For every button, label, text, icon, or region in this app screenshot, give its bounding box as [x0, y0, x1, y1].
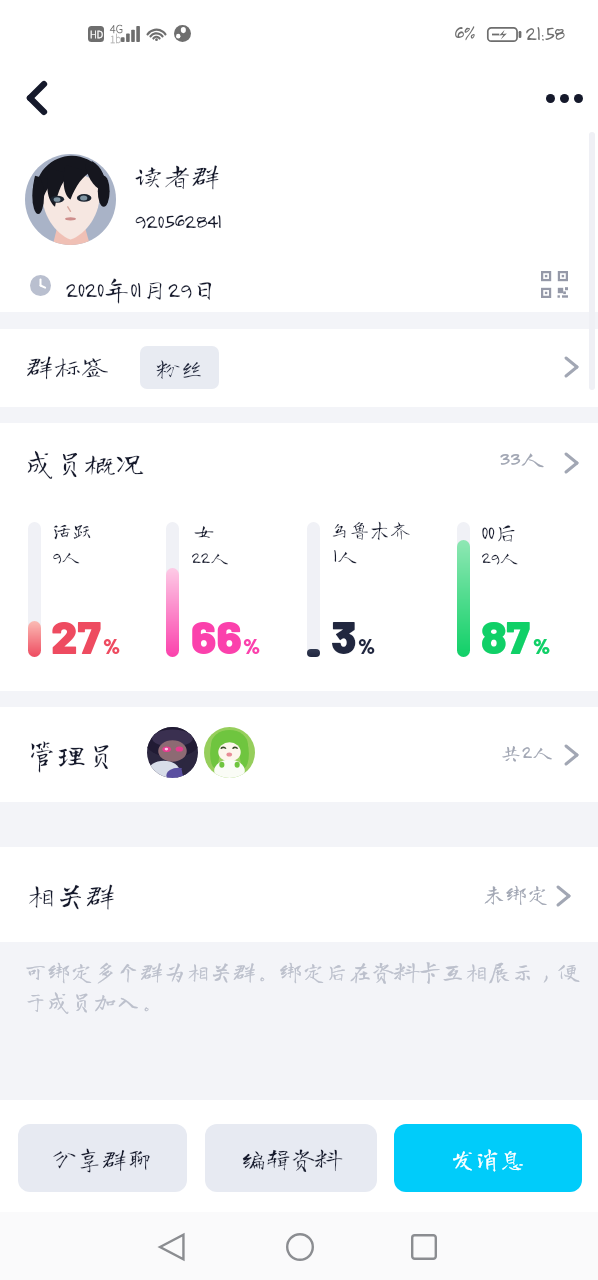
- staticText: 相关群: [26, 880, 116, 910]
- staticText: 21:58: [525, 21, 564, 45]
- staticText: HD: [90, 27, 103, 41]
- staticText: 6%: [454, 21, 475, 45]
- staticText: 共2人: [500, 741, 554, 763]
- staticText: 读者群: [134, 161, 221, 190]
- button[interactable]: 编辑资料: [205, 1124, 377, 1192]
- staticText: %: [358, 633, 375, 658]
- staticText: 4G: [110, 20, 124, 36]
- staticText: 活跃: [52, 520, 92, 540]
- staticText: 分享群聊: [52, 1146, 153, 1171]
- staticText: 2020年01月29日: [65, 276, 218, 302]
- staticText: 1b: [110, 31, 122, 45]
- staticText: 87: [481, 608, 531, 663]
- staticText: 粉丝: [156, 356, 204, 380]
- staticText: %: [103, 633, 120, 658]
- button[interactable]: Back: [144, 1219, 200, 1275]
- staticText: 成员概况: [25, 448, 145, 478]
- button[interactable]: 发消息: [394, 1124, 582, 1192]
- button[interactable]: [0, 423, 598, 495]
- staticText: %: [533, 633, 550, 658]
- staticText: 27: [51, 608, 102, 663]
- button[interactable]: More options: [536, 70, 592, 126]
- staticText: %: [243, 633, 260, 658]
- staticText: 22人: [191, 547, 230, 567]
- button[interactable]: [0, 847, 598, 942]
- staticText: 编辑资料: [241, 1146, 342, 1171]
- staticText: 发消息: [450, 1146, 526, 1171]
- staticText: 乌鲁木齐: [329, 519, 411, 539]
- button[interactable]: [0, 329, 598, 407]
- staticText: 未绑定: [483, 883, 550, 905]
- button[interactable]: Home: [272, 1219, 328, 1275]
- staticText: 管理员: [27, 740, 117, 770]
- staticText: 可绑定多个群为相关群。绑定后在资料卡互相展示，便于成员加入。: [24, 960, 598, 1013]
- staticText: 1人: [333, 545, 359, 567]
- button[interactable]: [0, 262, 598, 312]
- staticText: 00后: [481, 519, 519, 544]
- staticText: 66: [191, 608, 242, 663]
- button[interactable]: Recent apps: [396, 1219, 452, 1275]
- button[interactable]: 粉丝: [140, 346, 219, 389]
- staticText: 女: [194, 520, 214, 540]
- staticText: 群标签: [26, 352, 109, 380]
- button[interactable]: [0, 134, 598, 262]
- button[interactable]: [0, 707, 598, 802]
- staticText: 3: [331, 608, 357, 663]
- staticText: 9人: [52, 546, 81, 566]
- button[interactable]: Back: [11, 72, 63, 124]
- button[interactable]: QR code: [532, 262, 576, 306]
- staticText: 33人: [499, 445, 546, 471]
- staticText: 920562841: [134, 208, 222, 234]
- staticText: 29人: [481, 547, 520, 567]
- button[interactable]: 分享群聊: [18, 1124, 187, 1192]
